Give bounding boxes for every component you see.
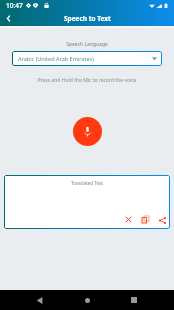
button[interactable]: Home — [80, 293, 94, 307]
button[interactable]: Share text — [154, 212, 170, 228]
button[interactable]: Copy text — [137, 211, 154, 228]
button[interactable]: Arabic (United Arab Emirates) — [12, 51, 162, 66]
staticText: Translated Text — [71, 180, 103, 186]
staticText: 10:47 — [6, 1, 23, 10]
staticText: Press and Hold the Mic to record the voi… — [0, 77, 174, 84]
staticText: Arabic (United Arab Emirates) — [18, 55, 94, 62]
button[interactable]: Recent apps — [127, 293, 141, 307]
button[interactable]: Back — [32, 293, 46, 307]
staticText: Speech to Text — [64, 14, 111, 23]
button[interactable]: Clear text — [120, 211, 137, 228]
staticText: Speech Language — [0, 41, 174, 48]
button[interactable]: Record voice — [73, 117, 102, 146]
button[interactable]: Back — [0, 11, 16, 26]
